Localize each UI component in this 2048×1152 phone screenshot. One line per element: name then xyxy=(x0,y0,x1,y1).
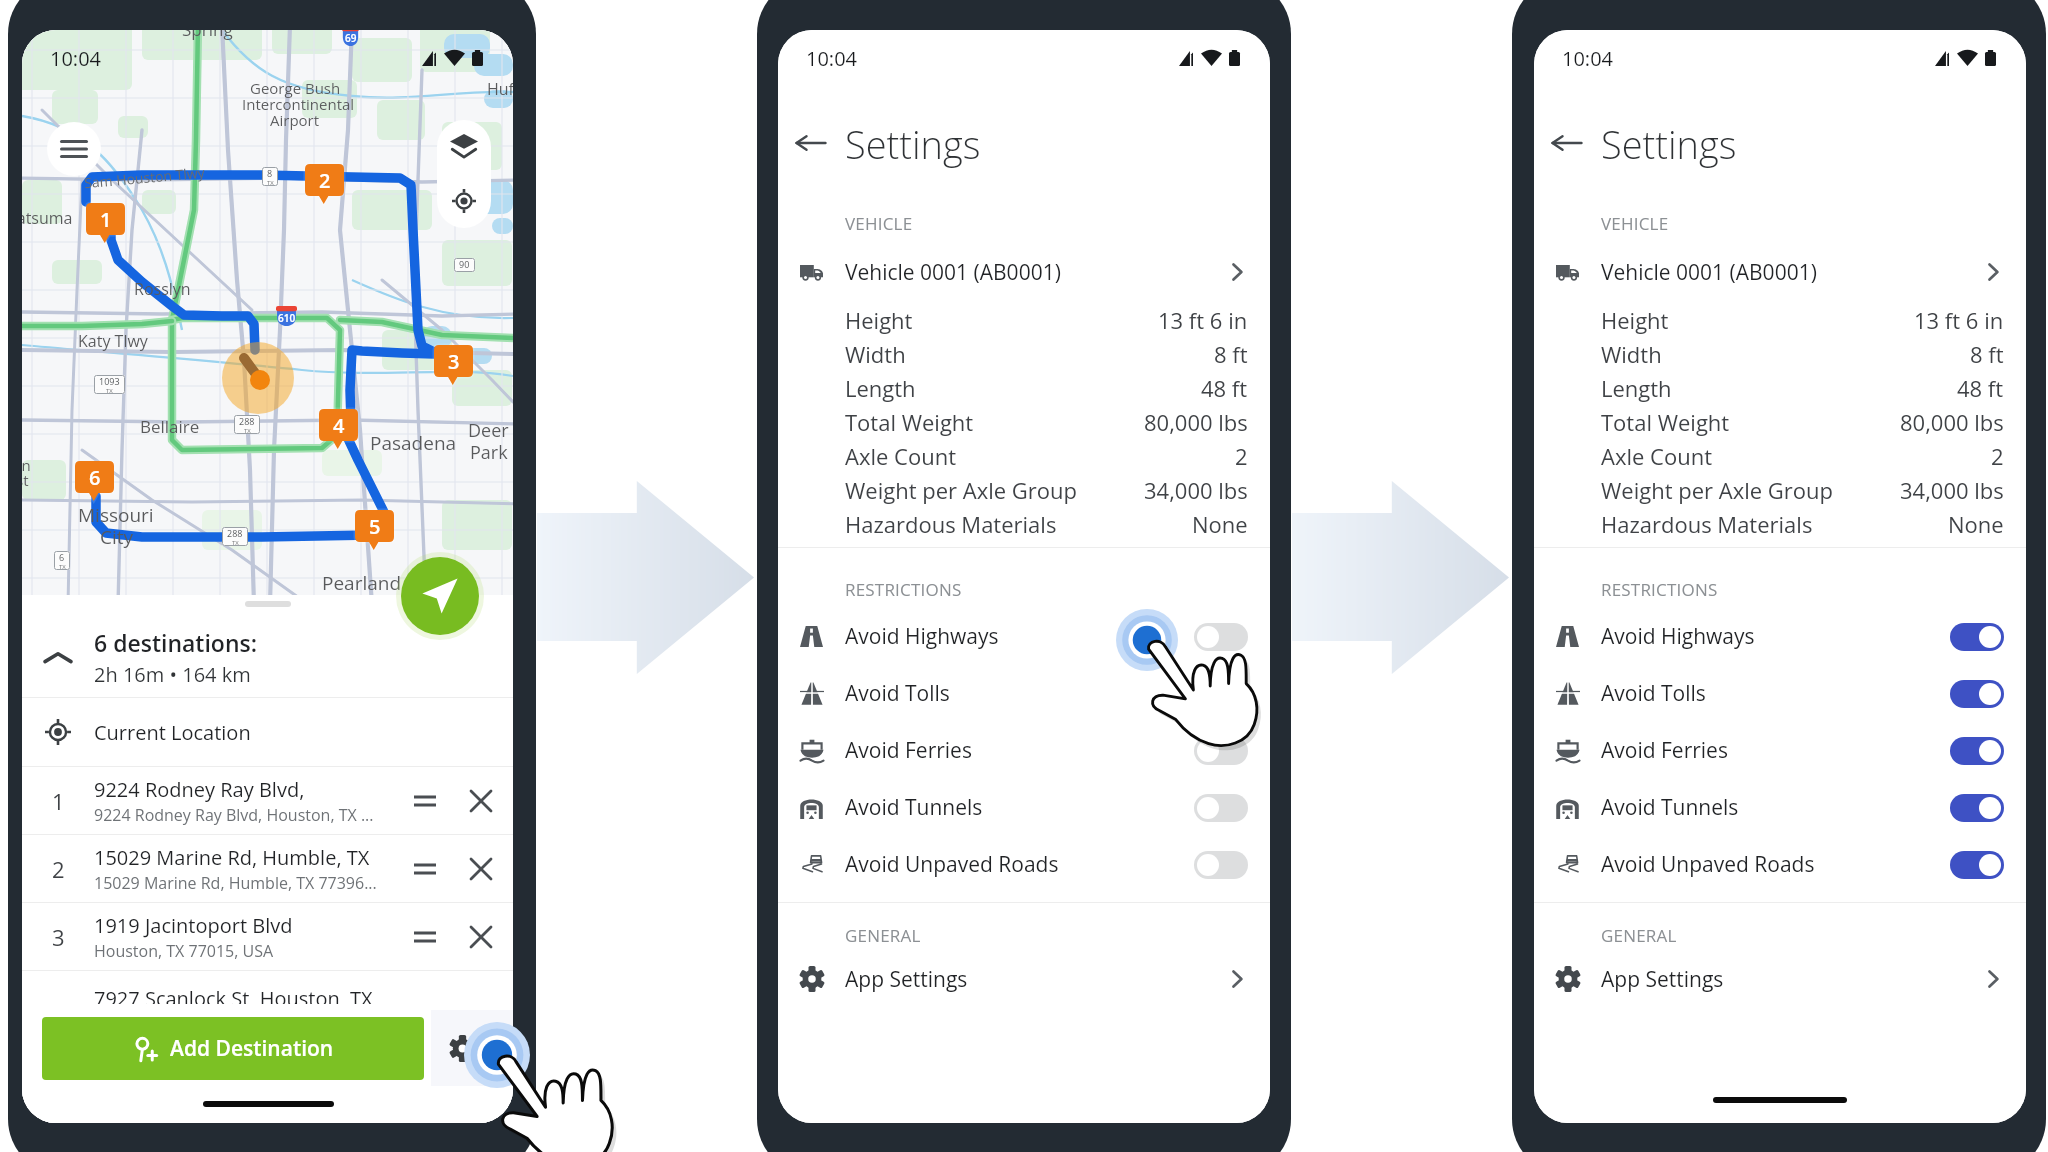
staticText: GENERAL xyxy=(1601,924,1677,947)
staticText: 5 xyxy=(369,513,381,540)
button[interactable]: Avoid Ferries xyxy=(1534,722,2004,779)
button[interactable]: Avoid Tunnels xyxy=(1534,779,2004,836)
staticText: None xyxy=(1948,509,2004,539)
staticText: Length xyxy=(1601,373,1672,403)
staticText: Avoid Highways xyxy=(845,622,999,651)
staticText: VEHICLE xyxy=(1601,212,1669,235)
staticText: 2 xyxy=(52,854,65,884)
staticText: Weight per Axle Group xyxy=(1601,475,1833,505)
staticText: 2 xyxy=(1235,441,1248,471)
staticText: 8 ft xyxy=(1214,339,1248,369)
staticText: 6 xyxy=(89,464,101,491)
button[interactable]: Avoid Tolls xyxy=(1534,665,2004,722)
staticText: GENERAL xyxy=(845,924,921,947)
staticText: 1 xyxy=(52,786,65,816)
staticText: 8 xyxy=(267,167,273,179)
button[interactable]: Start navigation xyxy=(401,557,479,635)
staticText: 7927 Scanlock St, Houston, TX xyxy=(94,985,373,1012)
button[interactable]: Back xyxy=(778,118,845,168)
button[interactable]: Avoid Highways xyxy=(778,608,1248,665)
staticText: 69 xyxy=(345,31,357,44)
staticText: Avoid Unpaved Roads xyxy=(1601,850,1815,879)
staticText: 10:04 xyxy=(806,45,857,72)
staticText: 10:04 xyxy=(1562,45,1613,72)
staticText: None xyxy=(1192,509,1248,539)
staticText: Settings xyxy=(1601,118,1737,168)
staticText: 1 xyxy=(100,206,112,233)
button[interactable]: Avoid Tolls xyxy=(778,665,1248,722)
staticText: 9224 Rodney Ray Blvd, Houston, TX ... xyxy=(94,804,374,826)
button[interactable]: Add Destination xyxy=(42,1017,424,1080)
staticText: 4 xyxy=(333,412,345,439)
button[interactable]: Avoid Unpaved Roads xyxy=(1534,836,2004,893)
button[interactable]: Current Location xyxy=(22,698,513,766)
staticText: st xyxy=(22,470,29,490)
staticText: 15029 Marine Rd, Humble, TX 77396... xyxy=(94,872,377,894)
staticText: Sam Houston Tlwy xyxy=(83,163,206,192)
staticText: Height xyxy=(1601,305,1669,335)
staticText: Vehicle 0001 (AB0001) xyxy=(845,258,1061,287)
staticText: 2h 16m • 164 km xyxy=(94,661,251,688)
button[interactable]: Remove xyxy=(453,903,509,970)
button[interactable]: 3 xyxy=(22,903,513,970)
button[interactable]: 2 xyxy=(22,835,513,902)
staticText: Avoid Ferries xyxy=(1601,736,1728,765)
staticText: Width xyxy=(1601,339,1662,369)
staticText: TX xyxy=(106,387,113,394)
button[interactable]: Avoid Tunnels xyxy=(778,779,1248,836)
staticText: 610 xyxy=(278,311,296,324)
staticText: 1093 xyxy=(99,375,120,387)
staticText: TX xyxy=(232,539,239,546)
button[interactable]: App Settings xyxy=(1534,955,2004,1003)
staticText: Weight per Axle Group xyxy=(845,475,1077,505)
staticText: Pearland xyxy=(322,570,402,596)
button[interactable]: 1 xyxy=(22,767,513,834)
button[interactable]: Back xyxy=(1534,118,1601,168)
staticText: RESTRICTIONS xyxy=(1601,578,1718,601)
staticText: 1919 Jacintoport Blvd xyxy=(94,912,293,939)
staticText: 9224 Rodney Ray Blvd, xyxy=(94,776,305,803)
button[interactable]: Remove xyxy=(453,767,509,834)
staticText: Katy Tlwy xyxy=(78,330,148,352)
staticText: Hazardous Materials xyxy=(1601,509,1813,539)
staticText: Total Weight xyxy=(845,407,974,437)
button[interactable]: Remove xyxy=(453,835,509,902)
button[interactable]: 6 destinations: xyxy=(22,618,513,697)
button[interactable]: Settings xyxy=(433,1017,491,1080)
button[interactable]: Avoid Highways xyxy=(1534,608,2004,665)
staticText: Current Location xyxy=(94,719,251,746)
button[interactable]: Avoid Ferries xyxy=(778,722,1248,779)
staticText: Hazardous Materials xyxy=(845,509,1057,539)
staticText: Avoid Tunnels xyxy=(845,793,983,822)
button[interactable]: Avoid Unpaved Roads xyxy=(778,836,1248,893)
button[interactable]: Reorder xyxy=(397,767,453,834)
staticText: Deer xyxy=(468,418,509,443)
button[interactable]: Map layers xyxy=(437,120,491,174)
staticText: Axle Count xyxy=(1601,441,1712,471)
button[interactable]: Reorder xyxy=(397,903,453,970)
button[interactable]: Vehicle 0001 (AB0001) xyxy=(778,248,1248,296)
button[interactable]: Reorder xyxy=(397,835,453,902)
staticText: Add Destination xyxy=(170,1034,334,1063)
staticText: 10:04 xyxy=(50,45,101,72)
button[interactable]: Menu xyxy=(47,122,101,176)
staticText: 2 xyxy=(1991,441,2004,471)
staticText: 48 ft xyxy=(1201,373,1248,403)
staticText: 288 xyxy=(239,415,255,427)
staticText: VEHICLE xyxy=(845,212,913,235)
staticText: wn xyxy=(22,455,31,475)
staticText: 3 xyxy=(448,348,460,375)
button[interactable]: My location xyxy=(437,174,491,228)
staticText: Satsuma xyxy=(22,207,73,229)
staticText: Avoid Tunnels xyxy=(1601,793,1739,822)
staticText: RESTRICTIONS xyxy=(845,578,962,601)
staticText: 8 ft xyxy=(1970,339,2004,369)
staticText: City xyxy=(100,524,134,550)
button[interactable]: App Settings xyxy=(778,955,1248,1003)
staticText: 15029 Marine Rd, Humble, TX xyxy=(94,844,370,871)
staticText: 34,000 lbs xyxy=(1900,475,2004,505)
staticText: Height xyxy=(845,305,913,335)
staticText: 6 xyxy=(59,551,65,563)
staticText: 288 xyxy=(227,527,243,539)
button[interactable]: Vehicle 0001 (AB0001) xyxy=(1534,248,2004,296)
